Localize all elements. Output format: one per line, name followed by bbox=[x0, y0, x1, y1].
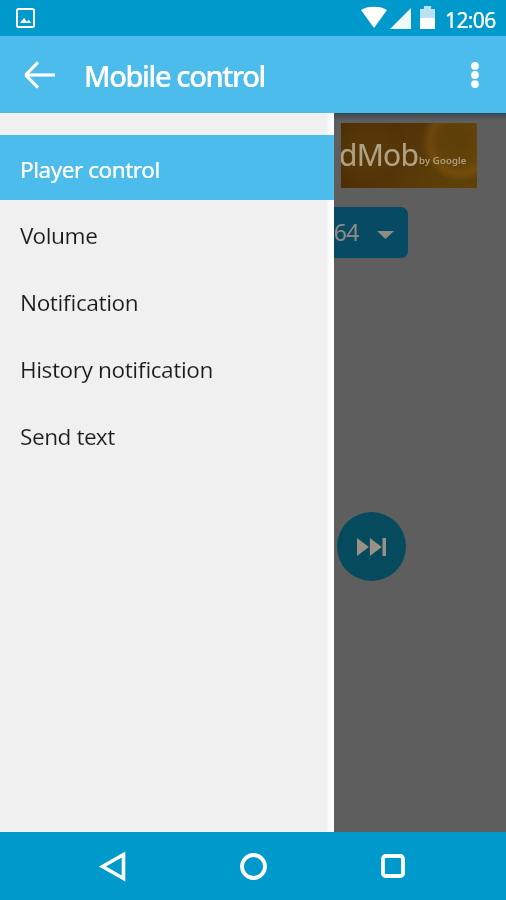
button[interactable]: Back bbox=[89, 842, 137, 890]
button[interactable]: Notification bbox=[0, 267, 334, 334]
staticText: Volume bbox=[20, 220, 98, 251]
button[interactable]: Recent apps bbox=[369, 842, 417, 890]
staticText: 12:06 bbox=[445, 6, 496, 35]
staticText: Notification bbox=[20, 287, 139, 318]
button[interactable]: Home bbox=[229, 842, 277, 890]
button[interactable]: More options bbox=[451, 51, 499, 99]
button[interactable]: Back bbox=[15, 51, 63, 99]
button[interactable]: Volume bbox=[0, 200, 334, 267]
button[interactable]: Player control bbox=[0, 135, 334, 200]
staticText: by Google bbox=[419, 154, 467, 167]
button[interactable]: Next track bbox=[337, 512, 406, 581]
staticText: Player control bbox=[20, 154, 160, 185]
staticText: History notification bbox=[20, 354, 213, 385]
button[interactable]: Send text bbox=[0, 401, 334, 468]
button[interactable]: History notification bbox=[0, 334, 334, 401]
button[interactable]: x64 bbox=[298, 207, 408, 258]
staticText: Send text bbox=[20, 421, 115, 452]
staticText: Mobile control bbox=[84, 56, 266, 95]
staticText: dMob bbox=[341, 134, 419, 175]
staticText: x64 bbox=[322, 216, 359, 247]
